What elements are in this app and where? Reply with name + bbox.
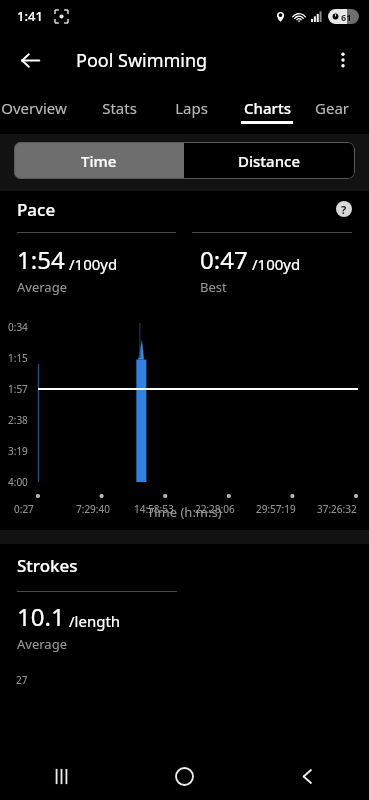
button[interactable]: Help about Pace	[331, 196, 357, 222]
staticText: 1:54	[17, 243, 65, 276]
staticText: 27	[16, 673, 28, 687]
staticText: 0:34	[8, 320, 28, 334]
staticText: Time	[81, 151, 117, 171]
button[interactable]: Stats	[82, 88, 156, 134]
staticText: 3:19	[8, 444, 28, 458]
staticText: 0:47	[200, 243, 248, 276]
staticText: Time (h:m:s)	[147, 503, 222, 521]
button[interactable]: Laps	[156, 88, 226, 134]
button[interactable]: Recent apps	[0, 752, 123, 800]
button[interactable]: Time	[14, 142, 184, 179]
staticText: 61	[341, 11, 352, 23]
staticText: 22:28:06	[195, 502, 235, 516]
button[interactable]: Charts	[226, 88, 308, 134]
staticText: Best	[200, 278, 227, 296]
staticText: ?	[341, 202, 347, 217]
staticText: Average	[17, 278, 67, 296]
button[interactable]: Back	[246, 752, 369, 800]
staticText: /length	[69, 611, 121, 631]
staticText: Distance	[238, 151, 301, 171]
staticText: 29:57:19	[256, 502, 296, 516]
button[interactable]: Distance	[184, 142, 355, 179]
staticText: /100yd	[252, 254, 301, 274]
staticText: Pool Swimming	[76, 48, 208, 73]
button[interactable]: Home	[123, 752, 246, 800]
button[interactable]: More options	[323, 40, 363, 80]
staticText: /100yd	[69, 254, 118, 274]
staticText: 14:58:53	[134, 502, 174, 516]
staticText: Overview	[1, 98, 67, 118]
staticText: Charts	[244, 98, 291, 118]
staticText: 4:00	[8, 475, 28, 489]
staticText: 2:38	[8, 413, 28, 427]
staticText: 1:15	[8, 351, 28, 365]
staticText: Gear	[315, 98, 349, 118]
staticText: 10.1	[17, 600, 65, 633]
staticText: Average	[17, 635, 67, 653]
staticText: 0:27	[14, 502, 34, 516]
button[interactable]: Overview	[0, 88, 82, 134]
button[interactable]: Back	[10, 40, 50, 80]
staticText: Laps	[175, 98, 208, 118]
staticText: 7:29:40	[76, 502, 110, 516]
button[interactable]: Gear	[308, 88, 355, 134]
staticText: 1:57	[8, 382, 28, 396]
staticText: Pace	[17, 198, 56, 221]
staticText: 37:26:32	[317, 502, 357, 516]
staticText: Strokes	[17, 554, 78, 577]
staticText: 1:41	[17, 7, 43, 25]
staticText: Stats	[102, 98, 137, 118]
